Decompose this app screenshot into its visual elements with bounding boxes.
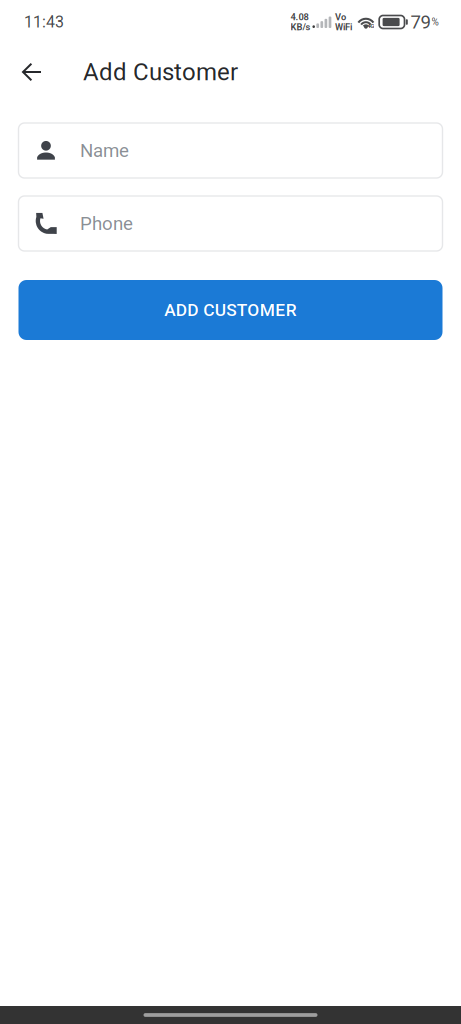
staticText: WiFi (335, 21, 352, 32)
staticText: Phone (80, 213, 133, 234)
staticText: Add Customer (83, 58, 238, 86)
button[interactable]: ADD CUSTOMER (18, 280, 442, 340)
staticText: 4G (367, 22, 374, 29)
staticText: KB/s (291, 21, 311, 32)
staticText: 79 (410, 11, 430, 33)
staticText: % (431, 16, 438, 28)
staticText: Vo (335, 12, 346, 22)
staticText: 11:43 (24, 13, 64, 31)
staticText: ADD CUSTOMER (164, 300, 297, 320)
staticText: Name (80, 140, 129, 161)
staticText: 4.08 (291, 12, 309, 22)
button[interactable]: Back (9, 47, 55, 97)
